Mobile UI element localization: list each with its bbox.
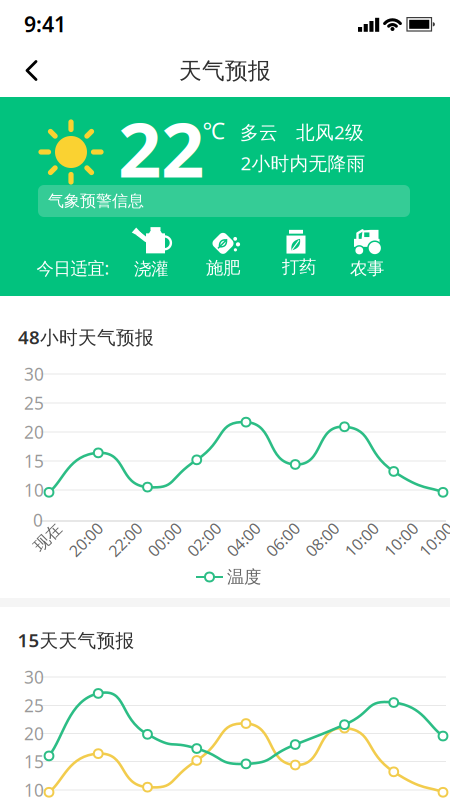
staticText: 农事 [350, 258, 384, 279]
staticText: 施肥 [206, 257, 240, 279]
staticText: 15 [24, 449, 44, 472]
staticText: 30 [24, 665, 44, 688]
staticText: 0 [33, 508, 43, 531]
staticText: 30 [24, 362, 44, 385]
staticText: 今日适宜: [36, 256, 109, 279]
button[interactable]: 施肥 [206, 225, 240, 279]
staticText: 20 [24, 420, 44, 443]
staticText: 多云 北风2级 [240, 120, 364, 144]
staticText: 现在 [32, 528, 64, 547]
staticText: 2小时内无降雨 [240, 151, 365, 175]
staticText: 10:00 [381, 529, 421, 550]
button[interactable]: 打药 [282, 226, 316, 278]
staticText: 25 [24, 694, 44, 717]
staticText: 25 [24, 391, 44, 414]
staticText: 10:00 [416, 529, 450, 550]
staticText: 9:41 [24, 10, 66, 38]
staticText: 15天天气预报 [17, 628, 134, 652]
button[interactable]: 气象预警信息 [38, 185, 410, 217]
staticText: 06:00 [263, 529, 303, 550]
staticText: 00:00 [145, 529, 185, 550]
staticText: ℃ [202, 115, 225, 145]
staticText: 20:00 [66, 529, 106, 550]
staticText: 04:00 [223, 529, 263, 550]
staticText: 02:00 [184, 529, 224, 550]
staticText: 10 [24, 478, 44, 501]
button[interactable]: Back [8, 52, 52, 88]
staticText: 20 [24, 722, 44, 745]
staticText: 22:00 [105, 529, 145, 550]
staticText: 10 [24, 778, 44, 800]
staticText: 打药 [282, 256, 316, 278]
staticText: 08:00 [302, 529, 342, 550]
button[interactable]: 浇灌 [129, 224, 173, 280]
staticText: 22 [118, 97, 204, 198]
staticText: 天气预报 [179, 57, 271, 85]
staticText: 气象预警信息 [48, 191, 144, 211]
staticText: 10:00 [342, 529, 382, 550]
staticText: 浇灌 [134, 258, 168, 280]
staticText: 48小时天气预报 [18, 325, 154, 349]
button[interactable]: 农事 [350, 225, 384, 279]
staticText: 温度 [227, 566, 261, 588]
staticText: 15 [24, 750, 44, 773]
